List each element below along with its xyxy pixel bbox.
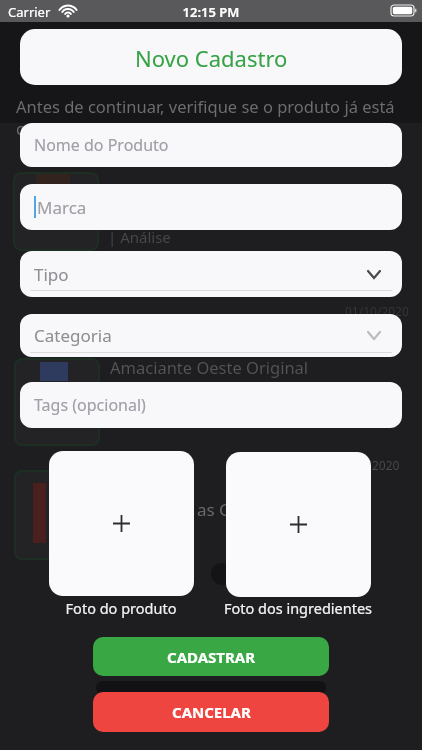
staticText: as G bbox=[197, 498, 232, 521]
button[interactable] bbox=[49, 451, 194, 596]
staticText: cadastrado. Para isso, consulte a lista. bbox=[16, 117, 309, 139]
staticText: Foto dos ingredientes bbox=[198, 598, 398, 618]
button[interactable]: Categoria bbox=[20, 314, 402, 357]
button[interactable]: Tipo bbox=[20, 251, 402, 297]
staticText: Marca bbox=[37, 196, 87, 219]
staticText: Tipo bbox=[34, 263, 69, 286]
staticText: Foto do produto bbox=[21, 598, 221, 618]
staticText: Categoria bbox=[34, 324, 112, 347]
button[interactable]: Tags (opcional) bbox=[20, 382, 402, 428]
button[interactable]: Nome do Produto bbox=[20, 123, 402, 167]
staticText: Nome do Produto bbox=[34, 134, 169, 156]
staticText: CANCELAR bbox=[172, 702, 251, 722]
staticText: 12:15 PM bbox=[0, 3, 422, 21]
button[interactable] bbox=[226, 452, 371, 597]
staticText: Novo Cadastro bbox=[135, 43, 288, 73]
staticText: Amaciante Oeste Original bbox=[110, 356, 309, 378]
staticText: CADASTRAR bbox=[167, 647, 256, 667]
button[interactable]: CANCELAR bbox=[93, 692, 329, 732]
staticText: Tags (opcional) bbox=[34, 394, 146, 416]
staticText: Carrier bbox=[8, 3, 51, 21]
staticText: 2020 bbox=[372, 457, 400, 473]
button[interactable]: Marca bbox=[20, 184, 402, 230]
button[interactable]: CADASTRAR bbox=[93, 637, 329, 676]
staticText: Antes de continuar, verifique se o produ… bbox=[16, 95, 395, 117]
staticText: | Análise bbox=[108, 227, 171, 247]
staticText: 01/10/2020 bbox=[345, 303, 409, 319]
